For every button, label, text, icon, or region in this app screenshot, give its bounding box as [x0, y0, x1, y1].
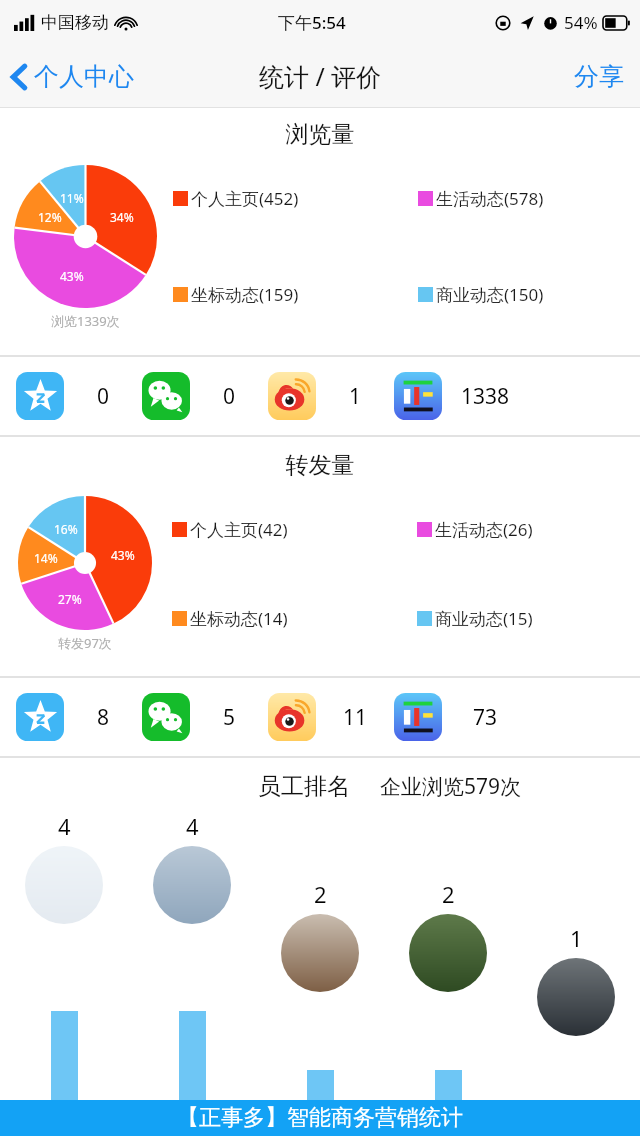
staticText: 个人中心: [34, 61, 134, 92]
button[interactable]: [537, 958, 615, 1036]
staticText: 2: [314, 879, 327, 909]
staticText: 5: [223, 703, 236, 732]
staticText: 43%: [60, 268, 84, 284]
button[interactable]: 分享: [574, 61, 624, 92]
staticText: 0: [97, 382, 110, 411]
staticText: 2: [442, 879, 455, 909]
staticText: 中国移动: [41, 12, 109, 33]
staticText: 下午5:54: [278, 11, 346, 34]
other: 应用: [394, 693, 442, 741]
button[interactable]: QQ空间: [0, 678, 640, 756]
staticText: 16%: [54, 521, 78, 537]
button[interactable]: [25, 846, 103, 924]
staticText: 1: [349, 382, 362, 411]
button[interactable]: 返回: [10, 61, 134, 92]
staticText: 73: [473, 703, 498, 732]
staticText: 个人主页(42): [190, 518, 288, 541]
other: 微信: [142, 693, 190, 741]
other: QQ空间: [16, 693, 64, 741]
staticText: 0: [223, 382, 236, 411]
staticText: 34%: [110, 209, 134, 225]
staticText: 员工排名: [258, 772, 350, 801]
staticText: 12%: [38, 209, 62, 225]
button[interactable]: QQ空间: [0, 357, 640, 435]
staticText: 4: [58, 811, 71, 841]
staticText: 生活动态(578): [436, 187, 544, 210]
staticText: 11%: [60, 190, 84, 206]
staticText: 分享: [574, 61, 624, 92]
button[interactable]: 【正事多】智能商务营销统计: [0, 1100, 640, 1136]
staticText: 4: [186, 811, 199, 841]
staticText: 坐标动态(14): [190, 607, 288, 630]
staticText: 商业动态(150): [436, 283, 544, 306]
staticText: 浏览量: [0, 120, 640, 149]
staticText: 27%: [58, 591, 82, 607]
staticText: 转发量: [0, 451, 640, 480]
other: 微博: [268, 693, 316, 741]
other: 应用: [394, 372, 442, 420]
staticText: 个人主页(452): [191, 187, 299, 210]
staticText: 14%: [34, 550, 58, 566]
staticText: 【正事多】智能商务营销统计: [177, 1104, 463, 1132]
staticText: 43%: [111, 547, 135, 563]
staticText: 1338: [461, 382, 510, 411]
other: 返回: [10, 62, 28, 92]
staticText: 企业浏览579次: [380, 772, 522, 801]
staticText: 生活动态(26): [435, 518, 533, 541]
staticText: 54%: [564, 11, 598, 34]
other: QQ空间: [16, 372, 64, 420]
staticText: 1: [570, 923, 583, 953]
button[interactable]: [409, 914, 487, 992]
staticText: 浏览1339次: [51, 312, 120, 330]
other: 微信: [142, 372, 190, 420]
staticText: 转发97次: [58, 634, 112, 652]
staticText: 11: [343, 703, 368, 732]
button[interactable]: [281, 914, 359, 992]
staticText: 8: [97, 703, 110, 732]
staticText: 商业动态(15): [435, 607, 533, 630]
staticText: 统计 / 评价: [259, 59, 382, 93]
button[interactable]: [153, 846, 231, 924]
staticText: 坐标动态(159): [191, 283, 299, 306]
other: 微博: [268, 372, 316, 420]
